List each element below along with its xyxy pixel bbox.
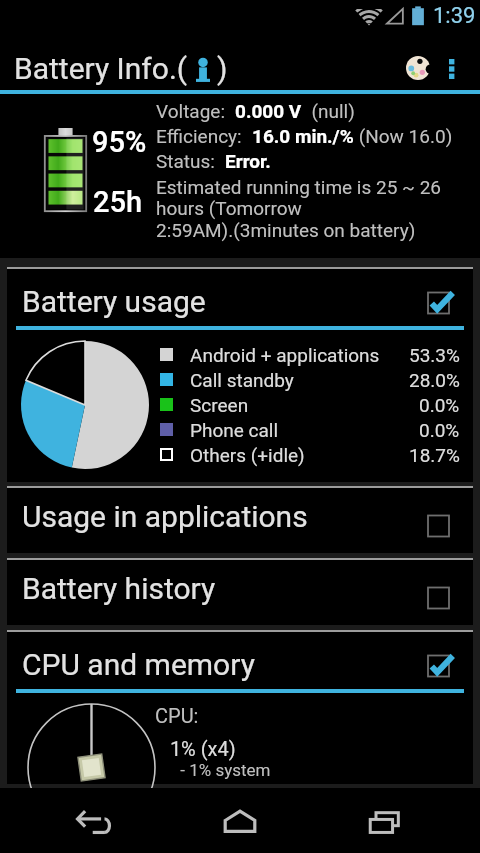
staticText: (Now 16.0) bbox=[354, 125, 453, 147]
staticText: Voltage: bbox=[156, 100, 235, 122]
button[interactable]: Home bbox=[190, 788, 290, 853]
staticText: 18.7% bbox=[409, 444, 460, 466]
staticText: Efficiency: bbox=[156, 125, 252, 147]
staticText: Phone call bbox=[190, 419, 279, 441]
button[interactable]: Usage in applications bbox=[7, 488, 473, 553]
staticText: Status: bbox=[156, 150, 225, 172]
staticText: 0.0% bbox=[419, 394, 460, 416]
staticText: Android + applications bbox=[190, 344, 380, 366]
staticText: Screen bbox=[190, 394, 249, 416]
staticText: Others (+idle) bbox=[190, 444, 305, 466]
button[interactable]: CPU and memory bbox=[7, 632, 473, 784]
staticText: 95% bbox=[92, 125, 147, 159]
button[interactable]: More options bbox=[438, 49, 465, 89]
staticText: - 1% system bbox=[155, 760, 271, 780]
button[interactable]: Recents bbox=[335, 788, 435, 853]
staticText: Battery Info.( bbox=[14, 51, 188, 86]
staticText: (null) bbox=[302, 100, 355, 122]
staticText: 1% (x4) bbox=[155, 737, 236, 760]
staticText: Battery history bbox=[22, 571, 216, 606]
staticText: 28.0% bbox=[409, 369, 460, 391]
staticText: 0.0% bbox=[419, 419, 460, 441]
button[interactable]: Back bbox=[45, 788, 145, 853]
staticText: 16.0 min./% bbox=[252, 125, 354, 147]
staticText: Usage in applications bbox=[22, 499, 308, 534]
staticText: ) bbox=[217, 51, 228, 86]
button[interactable]: Battery history bbox=[7, 560, 473, 625]
staticText: 25h bbox=[93, 185, 143, 219]
staticText: 53.3% bbox=[409, 344, 460, 366]
staticText: Error. bbox=[225, 150, 271, 172]
button[interactable]: Battery usage bbox=[7, 269, 473, 482]
staticText: 1:39 bbox=[433, 3, 476, 29]
button[interactable]: Theme bbox=[398, 48, 438, 88]
staticText: Estimated running time is 25 ~ 26 hours … bbox=[156, 176, 442, 242]
staticText: 0.000 V bbox=[235, 100, 302, 122]
staticText: CPU: bbox=[155, 704, 199, 727]
staticText: Call standby bbox=[190, 369, 294, 391]
staticText: Battery usage bbox=[22, 284, 206, 319]
staticText: CPU and memory bbox=[22, 647, 255, 682]
